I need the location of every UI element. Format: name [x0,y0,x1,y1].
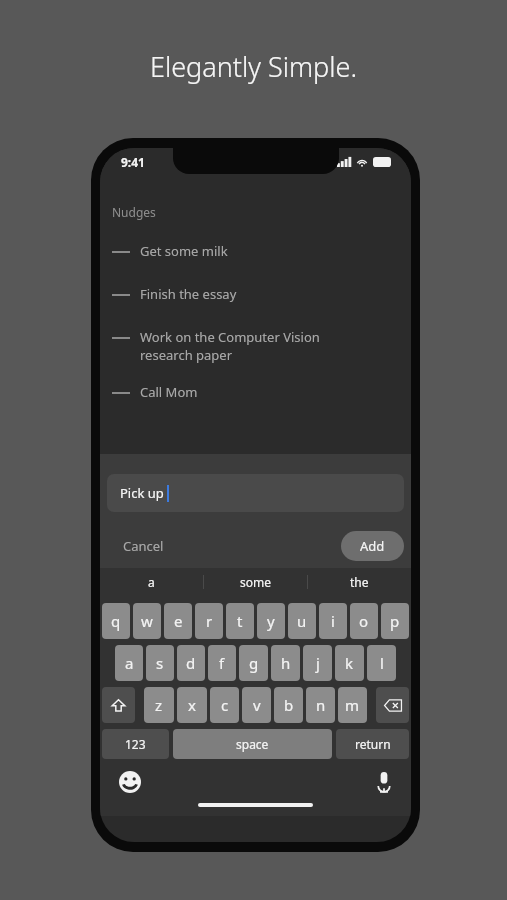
staticText: h [281,653,291,673]
staticText: x [188,695,196,715]
staticText: p [390,611,400,631]
button[interactable]: s [146,645,174,681]
staticText: j [316,653,320,673]
staticText: some [240,574,271,590]
button[interactable]: m [338,687,367,723]
button[interactable]: the [308,574,411,590]
button[interactable]: Shift [102,687,135,723]
staticText: space [236,736,269,752]
button[interactable]: h [271,645,300,681]
button[interactable]: Emoji [119,771,141,793]
staticText: Get some milk [140,242,228,260]
staticText: e [174,611,183,631]
button[interactable]: n [306,687,335,723]
button[interactable]: some [204,574,307,590]
staticText: q [111,611,121,631]
button[interactable]: q [102,603,130,639]
staticText: Finish the essay [140,285,237,303]
button[interactable]: Add [341,531,404,561]
staticText: Pick up [120,484,164,502]
button[interactable]: c [210,687,239,723]
button[interactable]: l [367,645,396,681]
button[interactable]: Finish the essay [100,285,411,303]
button[interactable]: Call Mom [100,383,411,401]
staticText: t [237,611,243,631]
staticText: Call Mom [140,383,198,401]
staticText: 9:41 [121,154,145,170]
button[interactable]: p [381,603,409,639]
button[interactable]: Cancel [107,530,180,562]
staticText: the [350,574,369,590]
staticText: r [206,611,213,631]
button[interactable]: d [177,645,205,681]
button[interactable]: g [239,645,268,681]
staticText: o [359,611,369,631]
button[interactable]: Dictation [376,771,392,793]
button[interactable]: a [100,574,203,590]
staticText: Elegantly Simple. [0,48,507,85]
button[interactable]: z [144,687,174,723]
button[interactable]: j [303,645,332,681]
button[interactable]: k [335,645,364,681]
staticText: m [345,695,360,715]
staticText: a [125,653,134,673]
staticText: 123 [125,736,146,752]
staticText: z [155,695,163,715]
button[interactable]: e [164,603,192,639]
button[interactable]: return [336,729,409,759]
button[interactable]: Work on the Computer Vision research pap… [100,328,411,364]
staticText: b [284,695,294,715]
button[interactable]: v [242,687,271,723]
button[interactable]: Backspace [376,687,409,723]
button[interactable]: o [350,603,378,639]
staticText: g [249,653,259,673]
staticText: c [221,695,229,715]
staticText: Nudges [112,204,156,220]
staticText: y [267,611,275,631]
button[interactable]: r [195,603,223,639]
staticText: a [148,574,155,590]
button[interactable]: f [208,645,236,681]
button[interactable]: a [115,645,143,681]
staticText: v [253,695,261,715]
staticText: Add [360,537,385,555]
staticText: d [186,653,196,673]
button[interactable]: Get some milk [100,242,411,260]
button[interactable]: b [274,687,303,723]
staticText: n [316,695,326,715]
button[interactable]: Pick up [107,474,404,512]
staticText: Cancel [123,537,164,555]
button[interactable]: space [173,729,332,759]
button[interactable]: x [177,687,207,723]
button[interactable]: i [319,603,347,639]
staticText: i [331,611,335,631]
button[interactable]: t [226,603,254,639]
button[interactable]: y [257,603,285,639]
staticText: f [219,653,225,673]
staticText: s [156,653,164,673]
staticText: Work on the Computer Vision research pap… [140,328,320,364]
button[interactable]: u [288,603,316,639]
staticText: w [141,611,153,631]
staticText: l [380,653,384,673]
button[interactable]: w [133,603,161,639]
button[interactable]: 123 [102,729,169,759]
staticText: u [297,611,307,631]
staticText: k [345,653,354,673]
staticText: return [355,736,391,752]
